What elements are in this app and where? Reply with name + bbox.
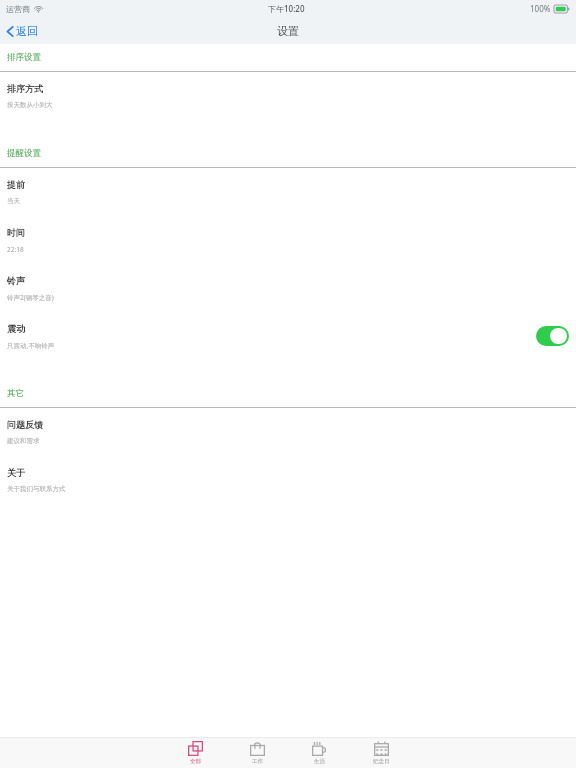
staticText: 关于 <box>7 467 25 478</box>
staticText: 设置 <box>277 24 299 38</box>
button[interactable]: 提前 <box>0 168 576 216</box>
button[interactable]: 纪念日 <box>350 738 412 768</box>
button[interactable]: 震动开关 <box>536 326 569 346</box>
staticText: 100% <box>530 3 551 14</box>
staticText: 问题反馈 <box>7 419 43 430</box>
staticText: 下午10:20 <box>268 3 305 14</box>
staticText: 震动 <box>7 323 25 334</box>
button[interactable]: 生活 <box>288 738 350 768</box>
button[interactable]: 铃声 <box>0 264 576 312</box>
staticText: 排序方式 <box>7 83 43 94</box>
button[interactable]: 震动 <box>0 312 576 360</box>
staticText: 当天 <box>7 197 20 205</box>
staticText: 提醒设置 <box>7 148 41 159</box>
staticText: 按天数从小到大 <box>7 101 53 109</box>
button[interactable]: 关于 <box>0 456 576 504</box>
staticText: 返回 <box>16 24 38 38</box>
button[interactable]: 全部 <box>164 738 226 768</box>
staticText: 纪念日 <box>373 758 390 765</box>
staticText: 排序设置 <box>7 52 41 63</box>
staticText: 提前 <box>7 179 25 190</box>
staticText: 关于我们与联系方式 <box>7 485 66 493</box>
staticText: 时间 <box>7 227 25 238</box>
staticText: 铃声 <box>7 275 25 286</box>
staticText: 其它 <box>7 388 24 399</box>
button[interactable]: 问题反馈 <box>0 408 576 456</box>
staticText: 只震动,不响铃声 <box>7 341 55 350</box>
staticText: 运营商 <box>6 4 30 14</box>
staticText: 全部 <box>190 758 201 765</box>
staticText: 22:18 <box>7 245 24 254</box>
button[interactable]: 排序方式 <box>0 72 576 120</box>
staticText: 生活 <box>314 758 325 765</box>
button[interactable]: 时间 <box>0 216 576 264</box>
button[interactable]: 返回 <box>0 20 48 42</box>
staticText: 工作 <box>252 758 263 765</box>
button[interactable]: 工作 <box>226 738 288 768</box>
staticText: 建议和需求 <box>7 437 40 445</box>
staticText: 铃声2(钢琴之音) <box>7 293 54 302</box>
